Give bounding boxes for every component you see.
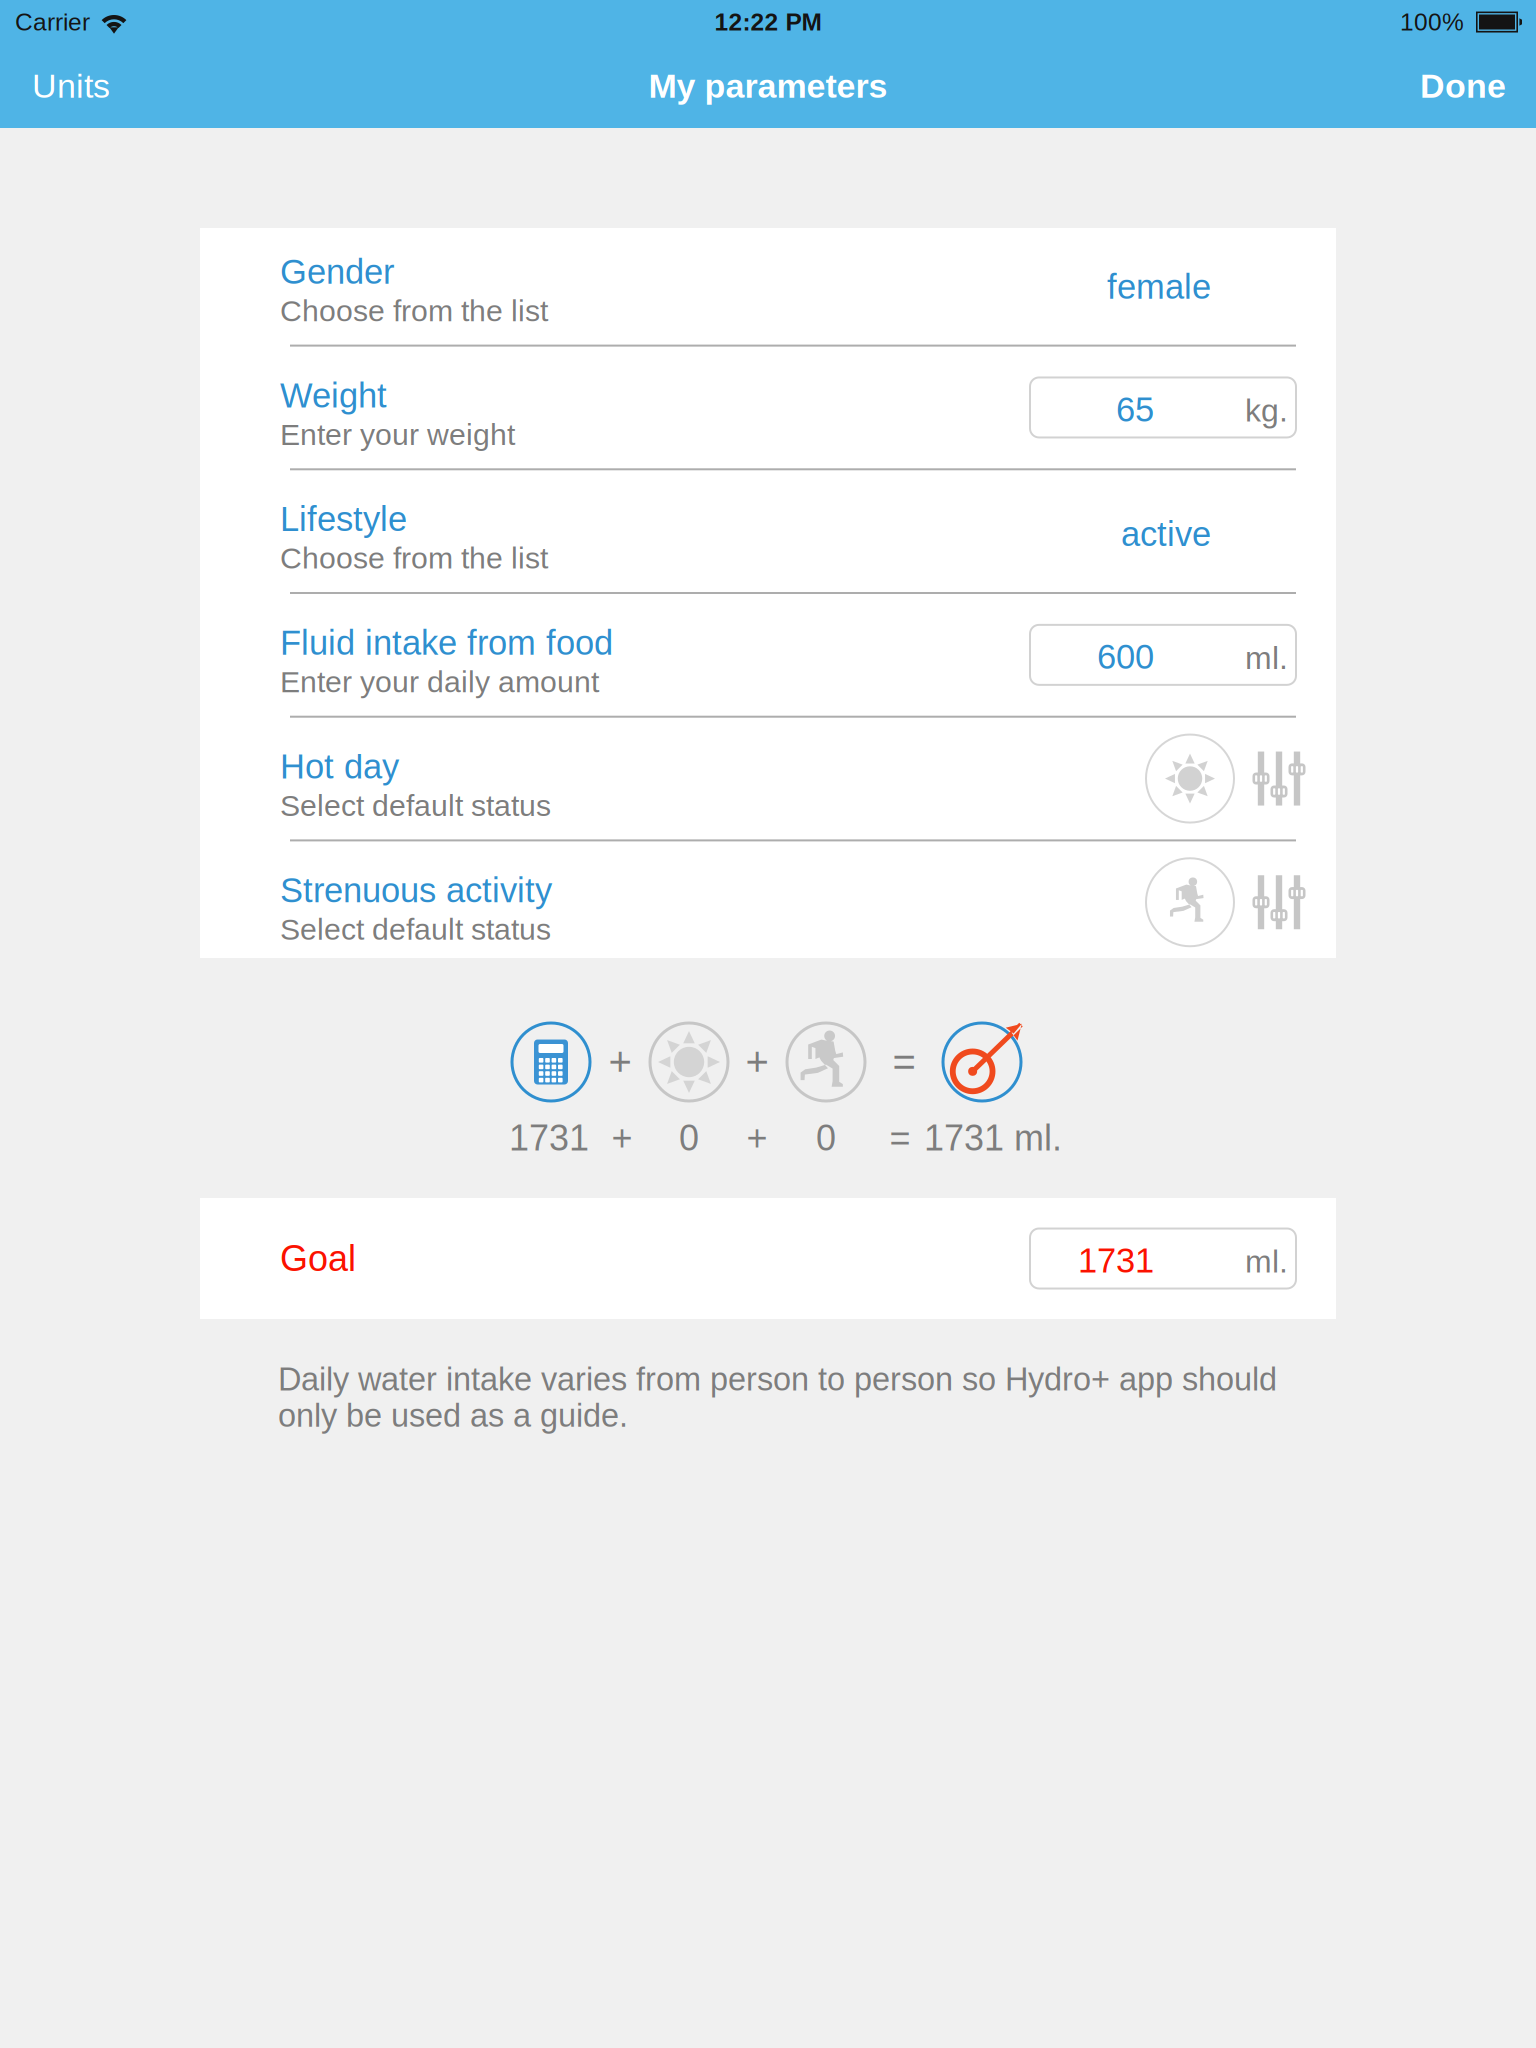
staticText: Select default status <box>280 912 551 946</box>
staticText: 12:22 PM <box>714 8 821 36</box>
staticText: + <box>745 1040 768 1084</box>
staticText: 1731 ml. <box>924 1118 1062 1158</box>
staticText: female <box>1107 267 1211 306</box>
staticText: Units <box>32 67 110 105</box>
staticText: Select default status <box>280 789 551 822</box>
staticText: 100% <box>1400 8 1464 36</box>
button[interactable]: 65 <box>1030 377 1296 437</box>
staticText: My parameters <box>648 67 887 105</box>
staticText: Lifestyle <box>280 500 407 538</box>
staticText: Enter your weight <box>280 418 515 451</box>
button[interactable]: Strenuous activity <box>1146 858 1234 946</box>
staticText: Enter your daily amount <box>280 665 599 699</box>
staticText: = <box>892 1040 915 1084</box>
button[interactable]: 600 <box>1030 625 1296 685</box>
staticText: + <box>746 1118 767 1158</box>
staticText: Hot day <box>280 747 399 786</box>
button[interactable]: 1731 <box>1030 1228 1296 1288</box>
button[interactable]: Gender <box>200 223 1336 345</box>
staticText: = <box>889 1118 910 1158</box>
staticText: 0 <box>679 1118 699 1158</box>
staticText: 600 <box>1097 638 1154 676</box>
staticText: Daily water intake varies from person to… <box>278 1361 1277 1434</box>
staticText: kg. <box>1245 393 1288 428</box>
button[interactable]: Hot day <box>1146 735 1234 823</box>
staticText: Goal <box>280 1238 356 1279</box>
staticText: + <box>611 1118 632 1158</box>
staticText: Gender <box>280 252 394 291</box>
staticText: 1731 <box>1078 1241 1154 1280</box>
staticText: Weight <box>280 376 387 415</box>
staticText: 1731 <box>509 1118 589 1158</box>
button[interactable]: Units <box>0 44 132 128</box>
button[interactable]: Adjust Strenuous activity <box>1244 875 1314 929</box>
staticText: + <box>608 1040 631 1084</box>
staticText: active <box>1121 515 1211 553</box>
staticText: Carrier <box>15 8 90 36</box>
staticText: 0 <box>816 1118 836 1158</box>
staticText: Done <box>1420 67 1506 105</box>
staticText: Choose from the list <box>280 541 548 575</box>
staticText: Choose from the list <box>280 294 548 328</box>
staticText: Fluid intake from food <box>280 624 613 662</box>
button[interactable]: Lifestyle <box>200 470 1336 592</box>
staticText: ml. <box>1245 1244 1288 1279</box>
staticText: ml. <box>1245 640 1288 676</box>
button[interactable]: Done <box>1398 44 1536 128</box>
staticText: 65 <box>1116 390 1154 429</box>
staticText: Strenuous activity <box>280 871 552 909</box>
button[interactable]: Adjust Hot day <box>1244 752 1314 806</box>
